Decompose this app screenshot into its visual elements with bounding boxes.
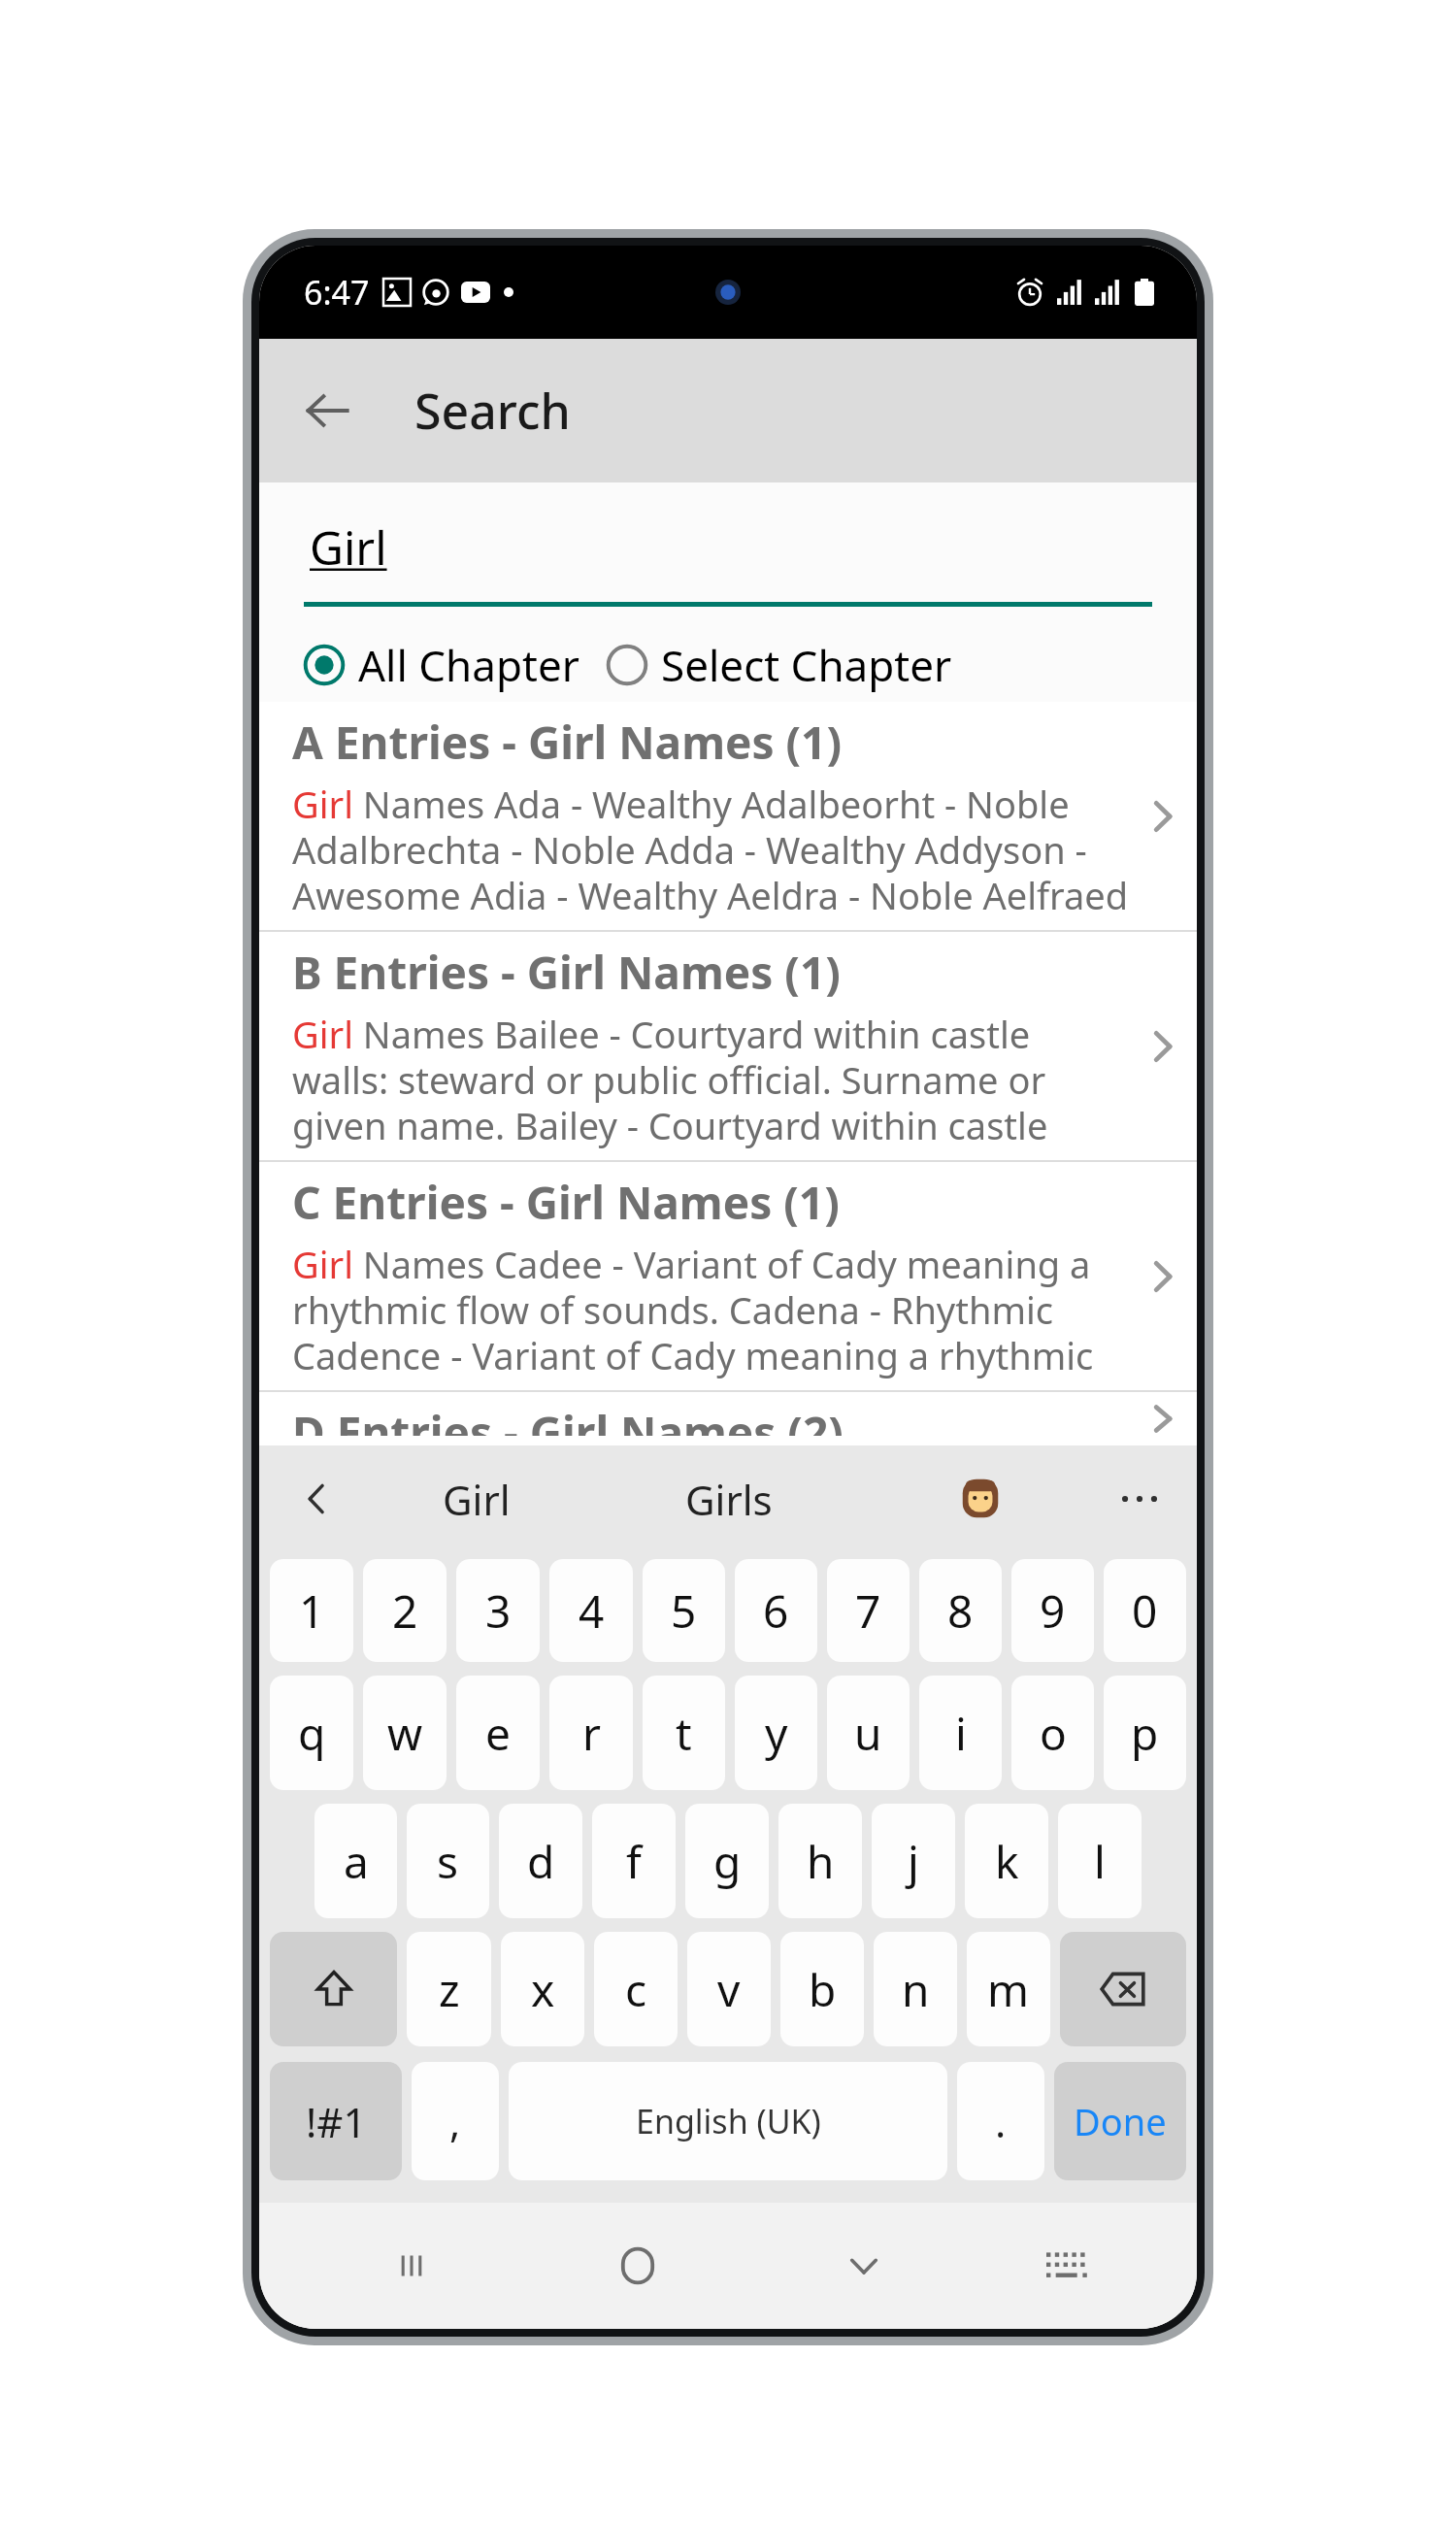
button[interactable]: Back [284,368,370,453]
button[interactable]: 8 [919,1559,1002,1662]
button[interactable]: Girl [350,1472,603,1527]
button[interactable]: Home [524,2203,750,2329]
staticText: s [437,1831,459,1892]
button[interactable]: e [456,1676,540,1790]
button[interactable]: D Entries - Girl Names (2) [259,1392,1197,1445]
staticText: x [531,1959,555,2020]
button[interactable]: j [872,1804,955,1918]
button[interactable]: 1 [270,1559,353,1662]
staticText: 2 [392,1580,418,1642]
staticText: Girl Names Ada - Wealthy Adalbeorht - No… [292,779,1129,920]
button[interactable]: Hide keyboard [750,2203,976,2329]
staticText: 1 [299,1580,325,1642]
button[interactable]: h [778,1804,862,1918]
staticText: m [987,1959,1030,2020]
button[interactable]: Recents [298,2203,524,2329]
button[interactable]: 5 [643,1559,725,1662]
button[interactable]: !#1 [270,2062,402,2180]
button[interactable]: f [592,1804,676,1918]
staticText: A Entries - Girl Names (1) [292,712,843,773]
button[interactable]: w [363,1676,447,1790]
staticText: 3 [485,1580,512,1642]
staticText: Girl [310,515,387,579]
staticText: n [902,1959,930,2020]
button[interactable]: , [412,2062,499,2180]
button[interactable]: b [780,1932,864,2046]
button[interactable]: 4 [549,1559,633,1662]
staticText: . [995,2094,1007,2149]
staticText: v [717,1959,741,2020]
staticText: D Entries - Girl Names (2) [292,1402,844,1436]
button[interactable]: English (UK) [509,2062,947,2180]
staticText: c [625,1959,647,2020]
staticText: C Entries - Girl Names (1) [292,1172,840,1233]
staticText: 5 [671,1580,697,1642]
staticText: o [1040,1703,1067,1764]
button[interactable]: l [1058,1804,1142,1918]
staticText: 6:47 [304,270,370,315]
button[interactable]: 9 [1011,1559,1094,1662]
button[interactable]: 2 [363,1559,447,1662]
staticText: j [908,1831,919,1892]
staticText: English (UK) [636,2099,821,2143]
staticText: 7 [855,1580,881,1642]
staticText: Done [1074,2096,1167,2146]
staticText: z [439,1959,460,2020]
staticText: Girl Names Cadee - Variant of Cady meani… [292,1239,1129,1380]
button[interactable]: v [687,1932,771,2046]
staticText: r [582,1703,601,1764]
button[interactable]: Previous [282,1465,350,1533]
staticText: f [626,1831,642,1892]
staticText: p [1131,1703,1159,1764]
button[interactable]: Done [1054,2062,1186,2180]
staticText: q [298,1703,326,1764]
button[interactable]: More options [1106,1465,1174,1533]
button[interactable]: c [594,1932,678,2046]
staticText: d [527,1831,555,1892]
button[interactable]: a [314,1804,397,1918]
button[interactable]: Backspace [1060,1932,1186,2046]
button[interactable]: . [957,2062,1044,2180]
button[interactable]: A Entries - Girl Names (1) [259,702,1197,930]
button[interactable]: g [685,1804,769,1918]
staticText: 0 [1132,1580,1158,1642]
button[interactable]: Shift [270,1932,397,2046]
button[interactable]: Emoji [854,1476,1106,1522]
button[interactable]: 7 [827,1559,910,1662]
button[interactable]: t [643,1676,725,1790]
staticText: k [995,1831,1019,1892]
staticText: All Chapter [358,636,579,694]
button[interactable]: s [407,1804,489,1918]
button[interactable]: m [967,1932,1050,2046]
button[interactable]: y [735,1676,817,1790]
staticText: b [809,1959,837,2020]
button[interactable]: B Entries - Girl Names (1) [259,932,1197,1160]
button[interactable]: x [501,1932,584,2046]
button[interactable]: 6 [735,1559,817,1662]
staticText: Girl [443,1472,511,1527]
button[interactable]: p [1104,1676,1186,1790]
staticText: a [344,1831,369,1892]
button[interactable]: z [407,1932,491,2046]
button[interactable]: 0 [1104,1559,1186,1662]
button[interactable]: 3 [456,1559,540,1662]
button[interactable]: All Chapter [302,636,579,694]
staticText: 8 [947,1580,974,1642]
staticText: Girls [685,1472,773,1527]
button[interactable]: u [827,1676,910,1790]
button[interactable]: r [549,1676,633,1790]
staticText: Girl Names Bailee - Courtyard within cas… [292,1009,1129,1150]
button[interactable]: d [499,1804,582,1918]
button[interactable]: n [874,1932,957,2046]
button[interactable]: q [270,1676,353,1790]
button[interactable]: k [965,1804,1048,1918]
staticText: u [854,1703,882,1764]
button[interactable]: Switch keyboard [976,2203,1158,2329]
button[interactable]: C Entries - Girl Names (1) [259,1162,1197,1390]
button[interactable]: o [1011,1676,1094,1790]
button[interactable]: Select Chapter [605,636,952,694]
staticText: 6 [763,1580,789,1642]
button[interactable]: Girls [603,1472,854,1527]
staticText: B Entries - Girl Names (1) [292,942,841,1003]
button[interactable]: i [919,1676,1002,1790]
